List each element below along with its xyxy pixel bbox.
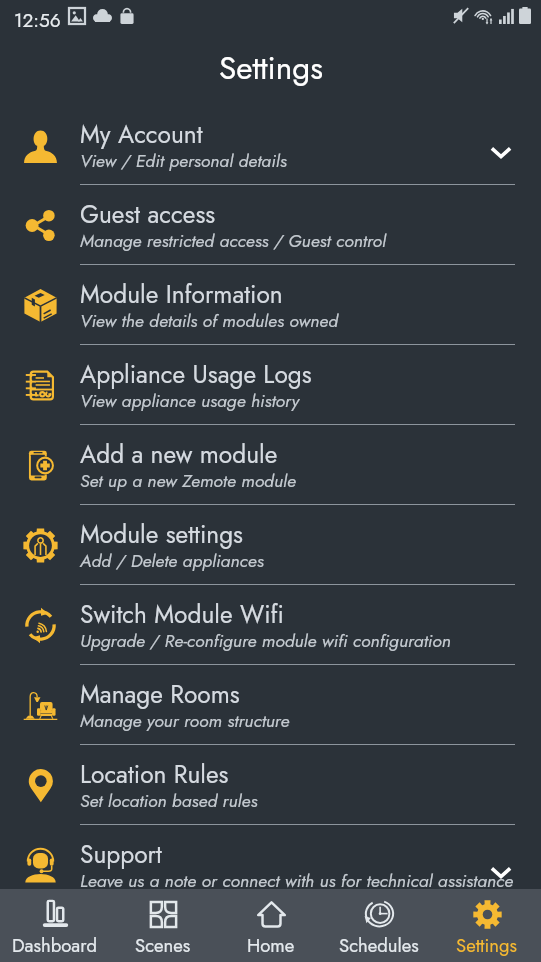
button[interactable]: Scenes	[109, 889, 217, 962]
button[interactable]: Module settings	[0, 505, 541, 585]
staticText: Support	[80, 837, 162, 872]
staticText: Home	[247, 932, 295, 959]
button[interactable]: Add a new module	[0, 425, 541, 505]
button[interactable]: Schedules	[325, 889, 433, 962]
staticText: Dashboard	[12, 932, 98, 959]
staticText: View the details of modules owned	[80, 308, 339, 334]
button[interactable]: Home	[217, 889, 325, 962]
staticText: View appliance usage history	[80, 388, 300, 414]
staticText: Add a new module	[80, 437, 278, 472]
staticText: Manage your room structure	[80, 708, 290, 734]
staticText: Guest access	[80, 197, 216, 232]
button[interactable]: Location Rules	[0, 745, 541, 825]
button[interactable]: Settings	[433, 889, 541, 962]
staticText: Appliance Usage Logs	[80, 357, 312, 392]
button[interactable]: Appliance Usage Logs	[0, 345, 541, 425]
staticText: Add / Delete appliances	[80, 548, 264, 574]
button[interactable]: Expand	[489, 860, 513, 884]
staticText: Settings	[219, 45, 323, 91]
button[interactable]: Switch Module Wifi	[0, 585, 541, 665]
staticText: Set location based rules	[80, 788, 258, 814]
staticText: Switch Module Wifi	[80, 597, 284, 632]
staticText: My Account	[80, 117, 203, 152]
button[interactable]: Dashboard	[0, 889, 109, 962]
staticText: Manage Rooms	[80, 677, 240, 712]
staticText: Location Rules	[80, 757, 229, 792]
staticText: Module settings	[80, 517, 243, 552]
staticText: Upgrade / Re-configure module wifi confi…	[80, 628, 451, 654]
staticText: Manage restricted access / Guest control	[80, 228, 386, 254]
staticText: 12:56	[14, 7, 61, 34]
staticText: View / Edit personal details	[80, 148, 287, 174]
staticText: Scenes	[135, 932, 191, 959]
button[interactable]: Support	[0, 825, 541, 905]
button[interactable]: Guest access	[0, 185, 541, 265]
staticText: Set up a new Zemote module	[80, 468, 296, 494]
staticText: Settings	[456, 932, 518, 959]
staticText: Leave us a note or connect with us for t…	[80, 868, 514, 894]
button[interactable]: Expand	[489, 140, 513, 164]
staticText: Module Information	[80, 277, 283, 312]
button[interactable]: Manage Rooms	[0, 665, 541, 745]
button[interactable]: Module Information	[0, 265, 541, 345]
button[interactable]: My Account	[0, 105, 541, 185]
staticText: Schedules	[339, 932, 419, 959]
